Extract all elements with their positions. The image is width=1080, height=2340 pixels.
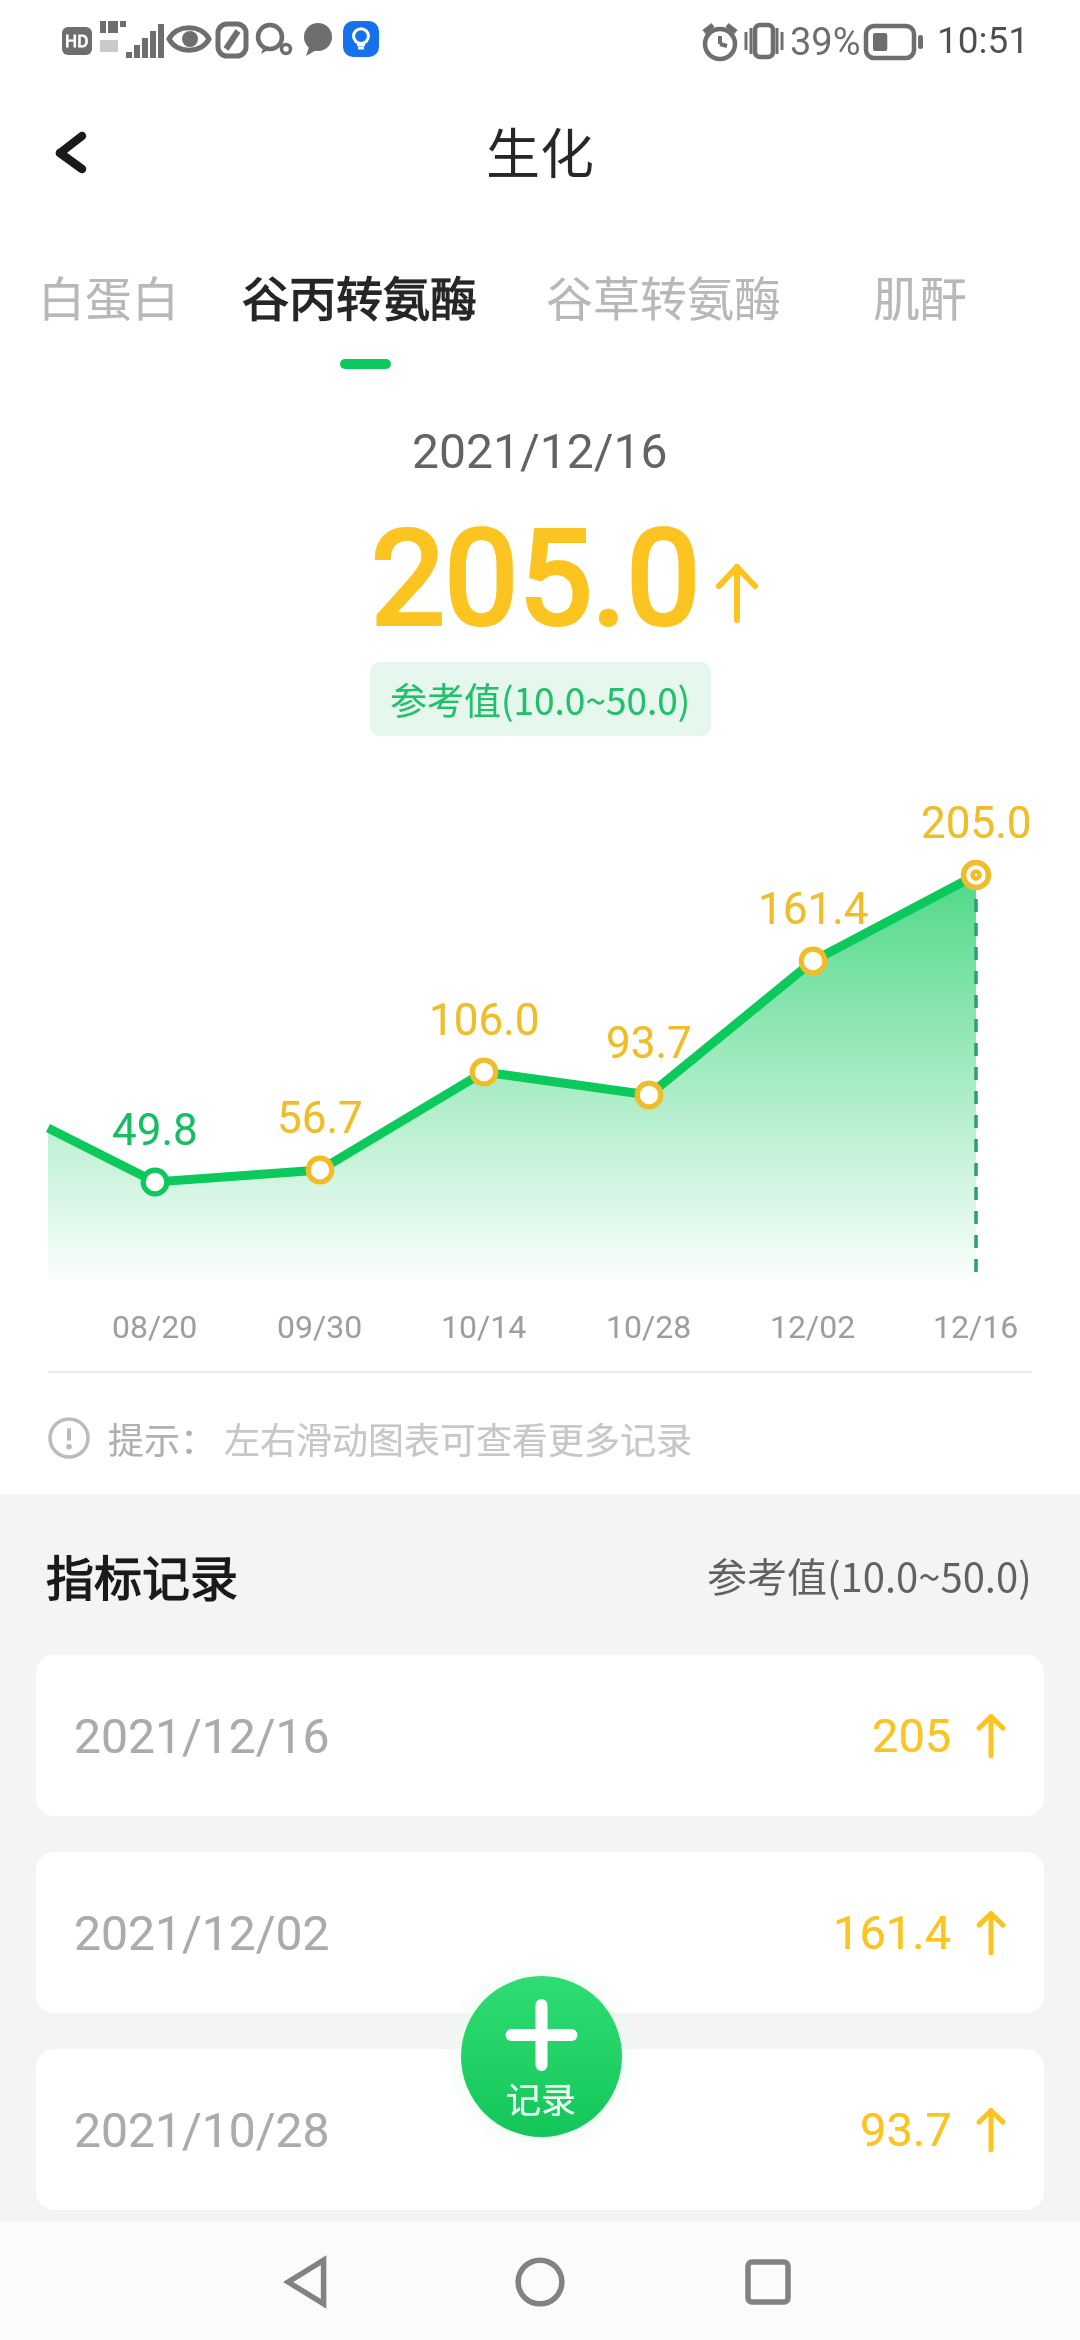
- staticText: 10/28: [606, 1308, 692, 1346]
- staticText: 49.8: [112, 1104, 198, 1156]
- button[interactable]: Back: [262, 2236, 354, 2328]
- staticText: 09/30: [277, 1308, 363, 1346]
- staticText: 记录: [506, 2072, 577, 2123]
- staticText: 93.7: [860, 2102, 952, 2157]
- staticText: 参考值(10.0~50.0): [390, 672, 691, 726]
- button[interactable]: 2021/12/16: [36, 1655, 1044, 1816]
- button[interactable]: 白蛋白: [0, 261, 258, 381]
- staticText: 161.4: [833, 1905, 952, 1960]
- staticText: 2021/10/28: [74, 2102, 330, 2158]
- staticText: 12/02: [770, 1308, 856, 1346]
- staticText: HD: [65, 31, 89, 51]
- staticText: 106.0: [429, 994, 540, 1046]
- staticText: 生化: [486, 111, 594, 183]
- staticText: 2021/12/16: [412, 423, 668, 479]
- staticText: 56.7: [277, 1092, 363, 1144]
- button[interactable]: 谷草转氨酶: [513, 261, 813, 381]
- button[interactable]: 2021/10/28: [36, 2049, 1044, 2210]
- staticText: 08/20: [112, 1308, 198, 1346]
- staticText: 205.0: [371, 502, 701, 632]
- staticText: 161.4: [758, 883, 869, 935]
- button[interactable]: 记录: [461, 1976, 622, 2137]
- button[interactable]: 谷丙转氨酶: [209, 261, 509, 381]
- staticText: 205: [872, 1708, 952, 1763]
- staticText: 谷草转氨酶: [546, 261, 781, 329]
- button[interactable]: Back: [36, 122, 108, 194]
- button[interactable]: Recent apps: [722, 2236, 814, 2328]
- staticText: 2021/12/02: [74, 1905, 330, 1961]
- staticText: 指标记录: [46, 1540, 239, 1610]
- staticText: 参考值(10.0~50.0): [707, 1546, 1032, 1604]
- staticText: 12/16: [933, 1308, 1019, 1346]
- button[interactable]: Home: [494, 2236, 586, 2328]
- staticText: 谷丙转氨酶: [242, 261, 477, 329]
- staticText: 左右滑动图表可查看更多记录: [224, 1412, 693, 1464]
- staticText: 10:51: [937, 19, 1030, 62]
- staticText: 205.0: [921, 797, 1032, 849]
- staticText: 39%: [790, 20, 861, 65]
- staticText: 10/14: [441, 1308, 527, 1346]
- staticText: 提示：: [108, 1412, 217, 1464]
- button[interactable]: 肌酐: [770, 261, 1070, 381]
- staticText: 2021/12/16: [74, 1708, 330, 1764]
- button[interactable]: 2021/12/02: [36, 1852, 1044, 2013]
- staticText: 白蛋白: [38, 261, 179, 329]
- staticText: 肌酐: [873, 261, 967, 329]
- staticText: 93.7: [606, 1017, 692, 1069]
